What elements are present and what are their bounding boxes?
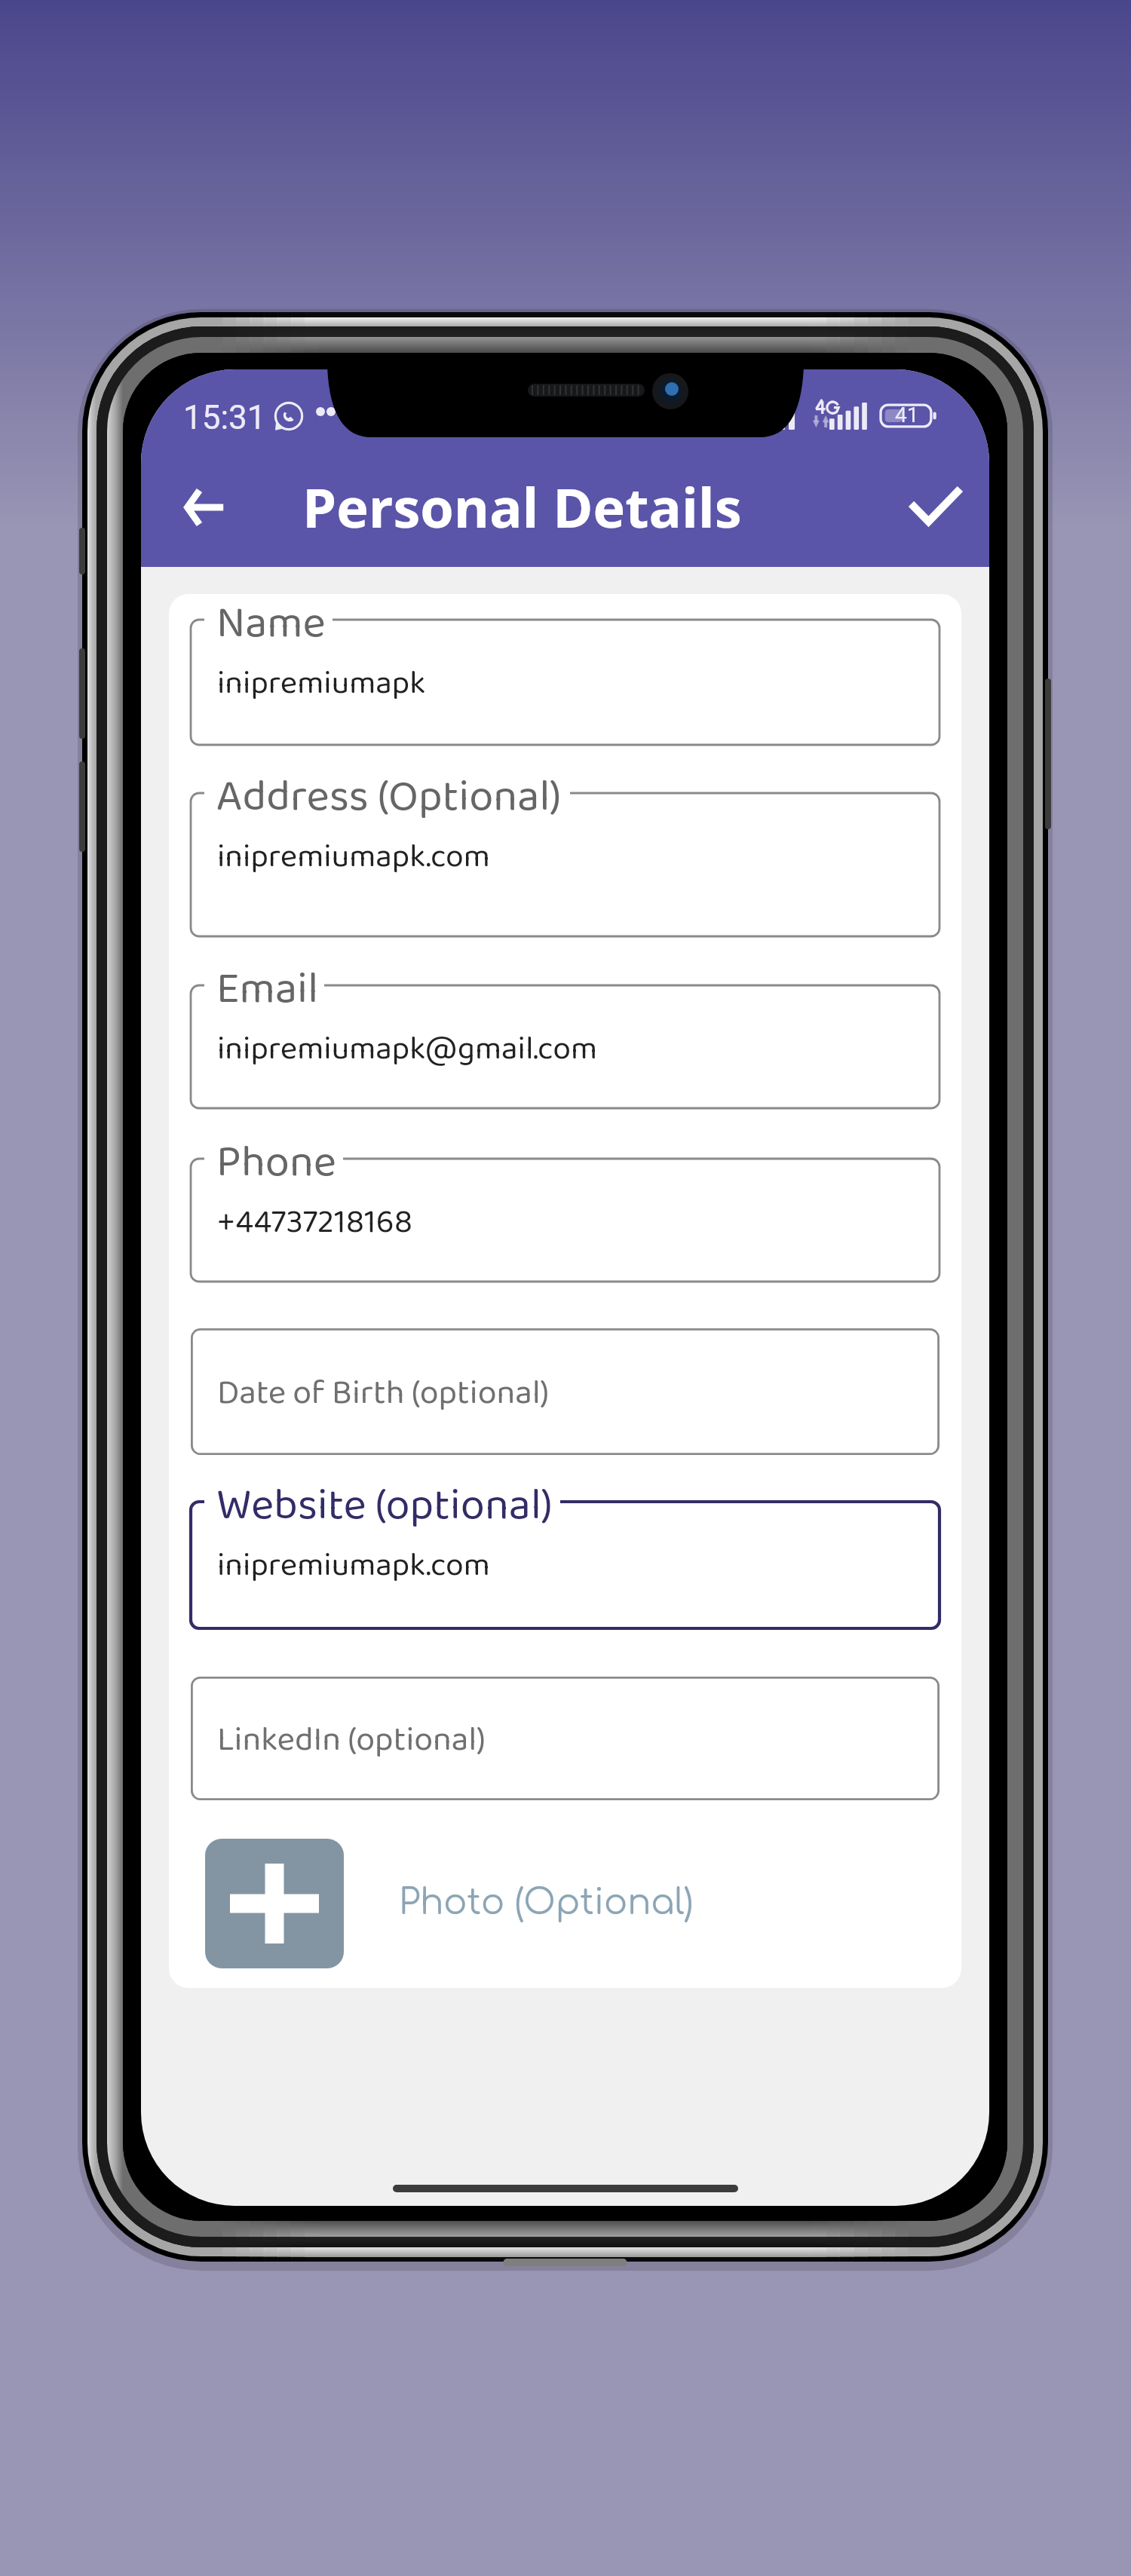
- button[interactable]: Website (optional): [191, 1502, 939, 1628]
- staticText: Email: [216, 954, 319, 1025]
- staticText: Phone: [216, 1128, 336, 1198]
- button[interactable]: Save: [898, 469, 973, 544]
- staticText: inipremiumapk.com: [217, 832, 490, 884]
- staticText: Address (Optional): [216, 762, 562, 832]
- staticText: Photo (Optional): [399, 1883, 694, 1922]
- staticText: inipremiumapk: [217, 658, 426, 710]
- button[interactable]: Email: [191, 985, 939, 1108]
- staticText: +44737218168: [217, 1197, 413, 1249]
- button[interactable]: Name: [191, 620, 939, 745]
- staticText: inipremiumapk.com: [217, 1540, 490, 1592]
- staticText: Name: [216, 594, 326, 659]
- staticText: Website (optional): [216, 1471, 553, 1541]
- button[interactable]: LinkedIn (optional): [191, 1677, 939, 1800]
- staticText: 41: [895, 403, 919, 427]
- staticText: LinkedIn (optional): [217, 1713, 486, 1767]
- button[interactable]: Address (Optional): [191, 793, 939, 936]
- staticText: inipremiumapk@gmail.com: [217, 1024, 598, 1076]
- button[interactable]: Add photo: [205, 1839, 344, 1968]
- staticText: Personal Details: [302, 470, 742, 544]
- button[interactable]: Phone: [191, 1159, 939, 1282]
- staticText: Date of Birth (optional): [217, 1366, 550, 1420]
- button[interactable]: Date of Birth (optional): [191, 1328, 939, 1455]
- button[interactable]: Back: [162, 466, 245, 549]
- staticText: 15:31: [183, 398, 266, 437]
